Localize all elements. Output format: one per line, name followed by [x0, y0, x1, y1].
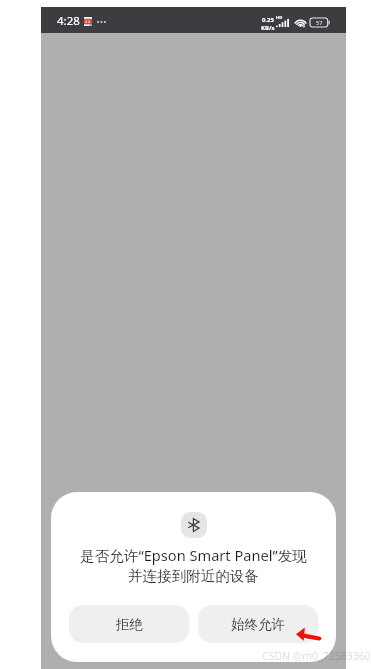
staticText: 始终允许 [231, 616, 285, 633]
staticText: 4:28 [57, 13, 80, 29]
staticText: HD [276, 15, 283, 21]
staticText: CSDN @m0_72583360 [262, 649, 371, 663]
button[interactable]: 拒绝 [69, 605, 189, 643]
staticText: 57 [316, 19, 323, 27]
staticText: 拒绝 [116, 616, 143, 633]
button[interactable]: 始终允许 [198, 605, 318, 643]
staticText: 0.25 [262, 16, 274, 24]
staticText: 并连接到附近的设备 [51, 567, 336, 585]
other: Bluetooth [181, 512, 207, 538]
staticText: KB/s [261, 24, 275, 32]
staticText: 是否允许“Epson Smart Panel”发现 [51, 545, 336, 565]
